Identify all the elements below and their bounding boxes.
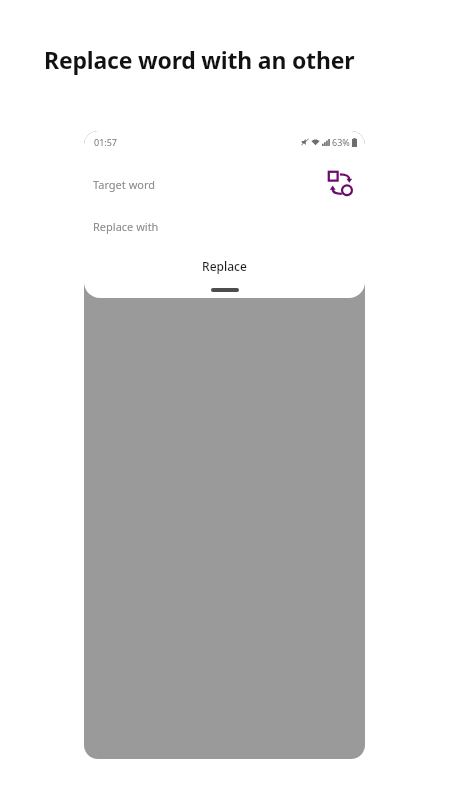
staticText: Replace word with an other [44, 44, 355, 75]
staticText: Replace [202, 258, 247, 274]
button[interactable]: Swap words [325, 168, 357, 200]
button[interactable]: Replace [84, 253, 365, 279]
button[interactable]: Replace with [84, 209, 365, 243]
staticText: Target word [93, 177, 156, 192]
staticText: Replace with [93, 219, 159, 234]
staticText: 63% [332, 136, 350, 148]
staticText: 01:57 [94, 136, 118, 148]
button[interactable]: Target word [84, 165, 365, 203]
